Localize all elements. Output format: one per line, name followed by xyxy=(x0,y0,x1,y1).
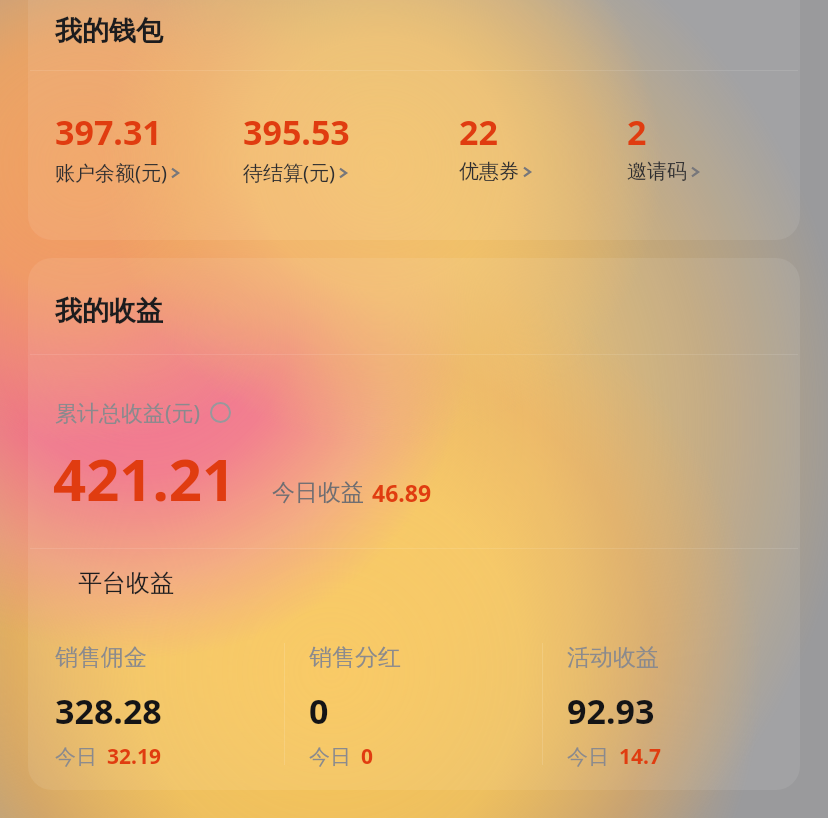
staticText: 我的钱包 xyxy=(55,14,163,48)
staticText: 邀请码 xyxy=(627,159,687,184)
button[interactable]: 平台收益 xyxy=(72,565,180,601)
staticText: 今日 xyxy=(567,744,609,770)
staticText: 46.89 xyxy=(372,477,432,508)
staticText: 328.28 xyxy=(55,688,162,734)
staticText: 2 xyxy=(627,109,647,155)
staticText: 活动收益 xyxy=(567,643,659,672)
staticText: 22 xyxy=(459,109,498,155)
staticText: 397.31 xyxy=(55,109,162,155)
staticText: 优惠券 xyxy=(459,159,519,184)
staticText: 待结算(元) xyxy=(243,159,335,186)
button[interactable]: 活动收益 xyxy=(567,643,800,771)
staticText: 395.53 xyxy=(243,109,350,155)
staticText: 14.7 xyxy=(619,742,661,771)
button[interactable]: 累计总收益(元) xyxy=(55,397,231,427)
staticText: 销售分红 xyxy=(309,643,401,672)
button[interactable]: 22 xyxy=(459,109,627,184)
staticText: 平台收益 xyxy=(78,568,174,598)
staticText: 32.19 xyxy=(107,742,161,771)
other: 说明 xyxy=(210,402,231,423)
staticText: 421.21 xyxy=(53,439,236,518)
button[interactable]: 397.31 xyxy=(55,109,243,186)
staticText: 92.93 xyxy=(567,688,655,734)
button[interactable]: 销售佣金 xyxy=(55,643,284,771)
staticText: 今日 xyxy=(309,744,351,770)
button[interactable]: 销售分红 xyxy=(309,643,542,771)
staticText: 账户余额(元) xyxy=(55,159,167,186)
staticText: 销售佣金 xyxy=(55,643,147,672)
staticText: 今日收益 xyxy=(272,478,364,507)
staticText: 0 xyxy=(361,742,374,771)
staticText: 累计总收益(元) xyxy=(55,397,201,427)
staticText: 我的收益 xyxy=(55,294,163,328)
button[interactable]: 2 xyxy=(627,109,800,184)
button[interactable]: 395.53 xyxy=(243,109,459,186)
staticText: 今日 xyxy=(55,744,97,770)
staticText: 0 xyxy=(309,688,329,734)
